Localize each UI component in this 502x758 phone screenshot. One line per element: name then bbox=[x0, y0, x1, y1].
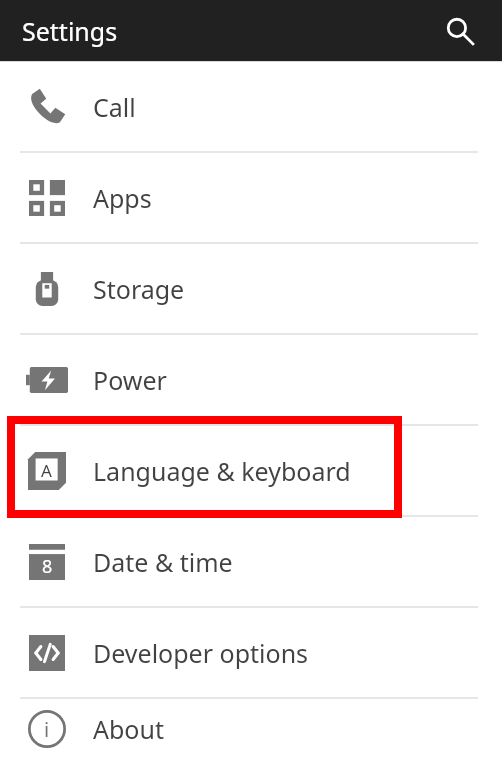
button[interactable]: i bbox=[0, 699, 502, 758]
button[interactable]: A bbox=[0, 426, 502, 515]
button[interactable]: Call bbox=[0, 62, 502, 151]
staticText: A bbox=[41, 459, 52, 482]
staticText: Power bbox=[93, 363, 167, 397]
staticText: 8 bbox=[42, 554, 53, 579]
button[interactable]: Apps bbox=[0, 153, 502, 242]
button[interactable]: Storage bbox=[0, 244, 502, 333]
staticText: Call bbox=[93, 90, 136, 124]
staticText: Developer options bbox=[93, 636, 309, 670]
staticText: i bbox=[44, 716, 50, 743]
staticText: Apps bbox=[93, 181, 152, 215]
button[interactable]: Power bbox=[0, 335, 502, 424]
button[interactable]: Search bbox=[438, 9, 482, 53]
staticText: Storage bbox=[93, 272, 185, 306]
staticText: About bbox=[93, 712, 164, 746]
staticText: Settings bbox=[22, 14, 118, 48]
staticText: Date & time bbox=[93, 545, 233, 579]
staticText: Language & keyboard bbox=[93, 454, 351, 488]
button[interactable]: Developer options bbox=[0, 608, 502, 697]
button[interactable]: 8 bbox=[0, 517, 502, 606]
